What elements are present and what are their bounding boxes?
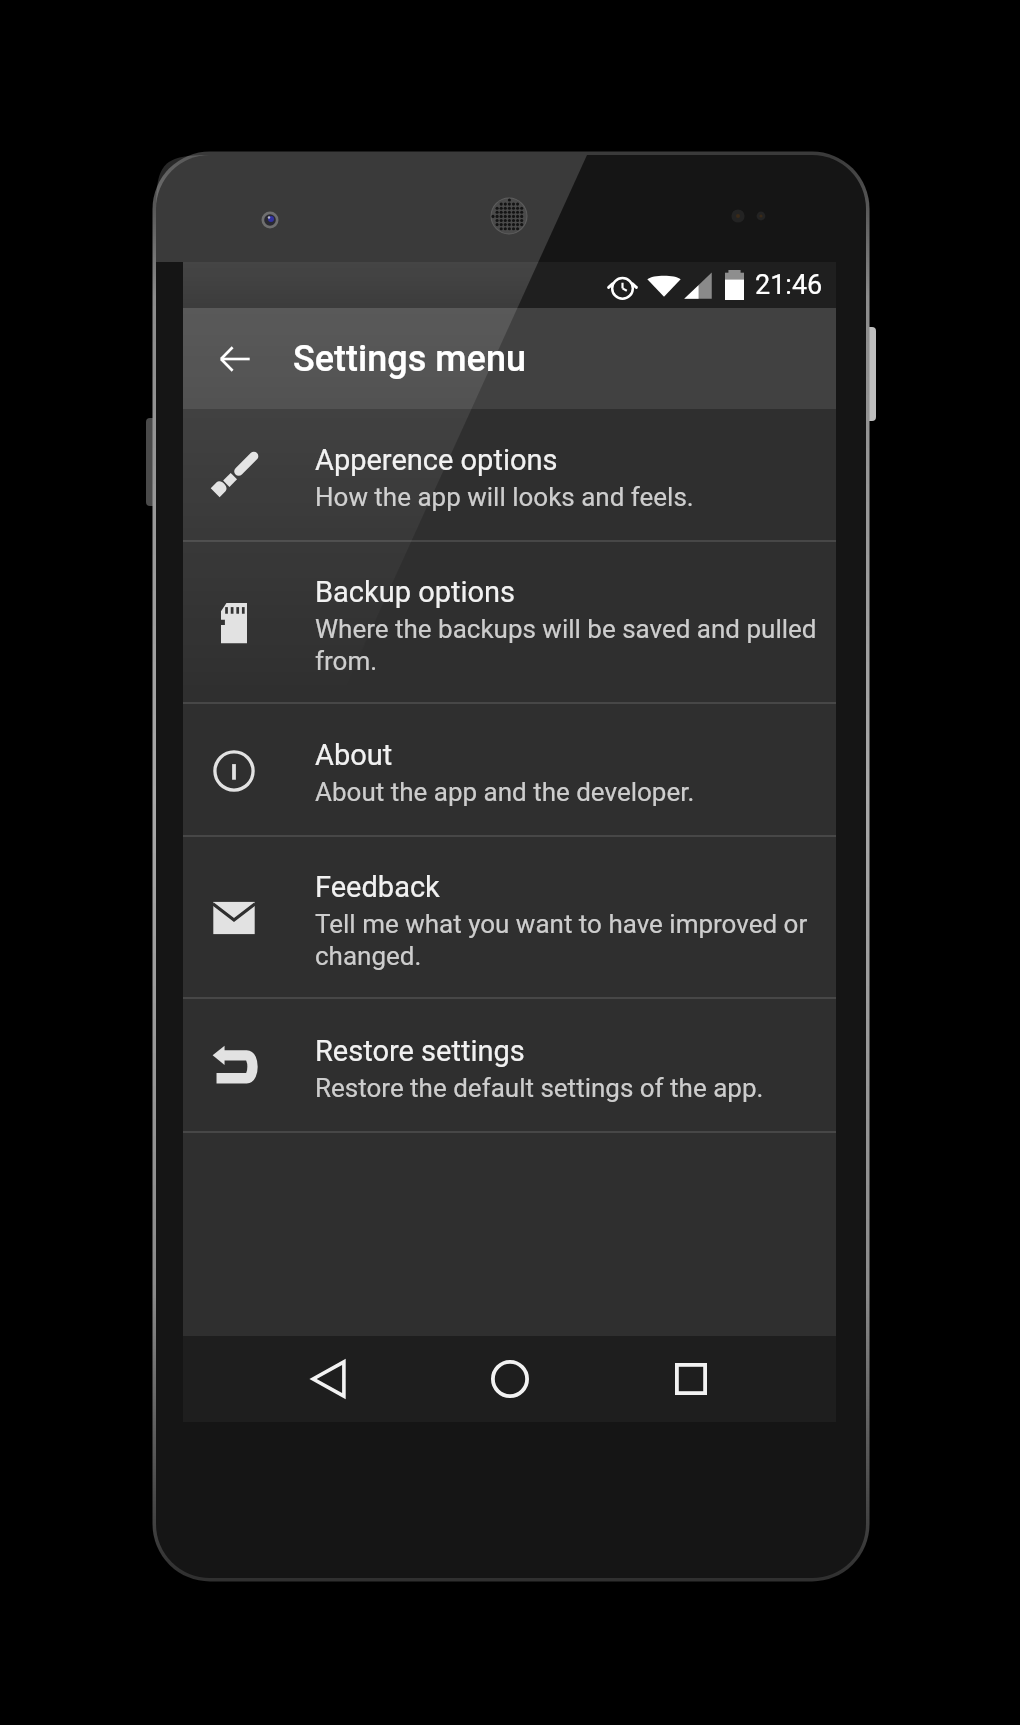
button[interactable]: Restore settings: [183, 999, 836, 1133]
staticText: Where the backups will be saved and pull…: [315, 614, 828, 676]
staticText: Settings menu: [293, 338, 526, 380]
staticText: How the app will looks and feels.: [315, 482, 694, 512]
button[interactable]: Back: [238, 1336, 419, 1422]
button[interactable]: Home: [419, 1336, 600, 1422]
staticText: Backup options: [315, 575, 516, 609]
button[interactable]: Navigate up: [183, 308, 286, 409]
staticText: Restore the default settings of the app.: [315, 1073, 764, 1103]
staticText: Feedback: [315, 870, 440, 904]
staticText: Apperence options: [315, 443, 558, 477]
button[interactable]: About: [183, 704, 836, 837]
staticText: Tell me what you want to have improved o…: [315, 909, 828, 971]
staticText: Restore settings: [315, 1034, 525, 1068]
staticText: About the app and the developer.: [315, 777, 695, 807]
staticText: About: [315, 738, 393, 772]
button[interactable]: Backup options: [183, 542, 836, 704]
button[interactable]: Feedback: [183, 837, 836, 999]
button[interactable]: Recent apps: [600, 1336, 781, 1422]
button[interactable]: Apperence options: [183, 409, 836, 542]
staticText: 21:46: [755, 269, 823, 301]
